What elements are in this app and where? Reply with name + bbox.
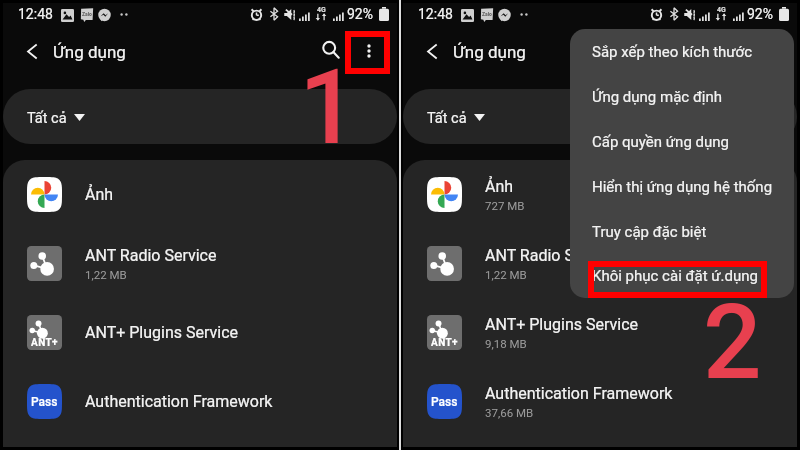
staticText: ANT+ [31,337,58,349]
staticText: ANT Radio Service [485,246,617,265]
staticText: Pass [31,395,58,409]
button[interactable]: Sắp xếp theo kích thước [570,29,794,74]
button[interactable]: ANT+ [3,298,397,367]
button[interactable]: ANT Radio Service [403,229,797,298]
button[interactable]: Search [713,32,749,68]
button[interactable]: ANT+ [403,298,797,367]
staticText: ANT+ [431,337,458,349]
button[interactable]: ANT Radio Service [3,229,397,298]
staticText: Ứng dụng mặc định [592,88,723,106]
staticText: 37,66 MB [485,406,534,419]
staticText: 1 [299,47,358,168]
staticText: Hiển thị ứng dụng hệ thống [592,178,773,196]
staticText: Pass [431,395,458,409]
button[interactable]: Search [313,32,349,68]
staticText: 1,22 MB [485,268,527,281]
button[interactable]: More options [351,33,387,69]
staticText: 9,18 MB [485,337,527,350]
staticText: 92% [347,6,373,22]
button[interactable]: More options [751,33,787,69]
staticText: 4G [317,6,326,14]
staticText: Zalo [81,11,93,17]
button[interactable]: Tất cả [3,89,397,144]
button[interactable]: Ảnh [403,160,797,229]
staticText: 4G [717,6,726,14]
button[interactable]: Tất cả [403,89,797,144]
button[interactable]: Ứng dụng mặc định [570,74,794,119]
staticText: ANT Radio Service [85,246,217,265]
staticText: Truy cập đặc biệt [592,223,707,241]
staticText: ANT+ Plugins Service [85,323,239,342]
staticText: ANT+ Plugins Service [485,315,639,334]
staticText: Ứng dụng [53,42,126,62]
staticText: Ứng dụng [453,42,526,62]
staticText: Authentication Framework [485,384,673,403]
staticText: 92% [747,6,773,22]
staticText: Khôi phục cài đặt ứ.dụng [592,267,758,285]
staticText: 12:48 [18,6,53,22]
staticText: Zalo [481,11,493,17]
staticText: Cấp quyền ứng dụng [592,133,729,151]
staticText: 1,22 MB [85,268,127,281]
button[interactable]: Pass [3,367,397,436]
staticText: 2 [703,282,762,403]
staticText: Sắp xếp theo kích thước [592,43,753,61]
staticText: Tất cả [427,110,467,127]
button[interactable]: Back [14,33,50,69]
button[interactable]: Hiển thị ứng dụng hệ thống [570,164,794,209]
button[interactable]: Khôi phục cài đặt ứ.dụng [570,254,794,298]
button[interactable]: Truy cập đặc biệt [570,209,794,254]
staticText: Tất cả [27,110,67,127]
staticText: Authentication Framework [85,392,273,411]
button[interactable]: Pass [403,367,797,436]
staticText: 727 MB [485,199,525,212]
button[interactable]: Cấp quyền ứng dụng [570,119,794,164]
staticText: 12:48 [418,6,453,22]
button[interactable]: Back [414,33,450,69]
staticText: Ảnh [485,177,514,196]
staticText: Ảnh [85,185,114,204]
button[interactable]: Ảnh [3,160,397,229]
